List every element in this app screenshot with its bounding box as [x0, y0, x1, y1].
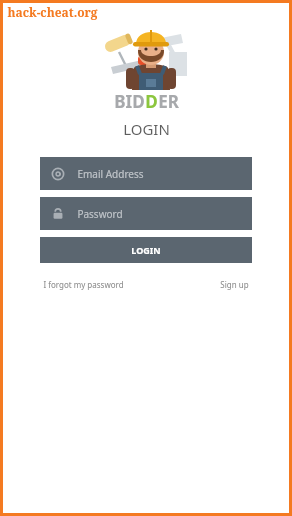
- staticText: Password: [77, 207, 123, 221]
- staticText: LOGIN: [123, 119, 170, 139]
- button[interactable]: Password: [40, 197, 252, 230]
- staticText: BID: [114, 90, 145, 113]
- button[interactable]: I forgot my password: [43, 275, 124, 294]
- staticText: LOGIN: [131, 244, 161, 256]
- button[interactable]: Email: [40, 157, 252, 190]
- button[interactable]: LOGIN: [40, 237, 252, 263]
- staticText: hack-cheat.org: [7, 4, 98, 20]
- staticText: I forgot my password: [43, 279, 124, 290]
- staticText: Email Address: [77, 167, 144, 181]
- other: Email: [52, 168, 64, 180]
- other: Password: [52, 208, 64, 220]
- staticText: D: [145, 90, 158, 113]
- staticText: Sign up: [220, 279, 249, 290]
- button[interactable]: Sign up: [220, 275, 249, 294]
- staticText: ER: [158, 90, 179, 113]
